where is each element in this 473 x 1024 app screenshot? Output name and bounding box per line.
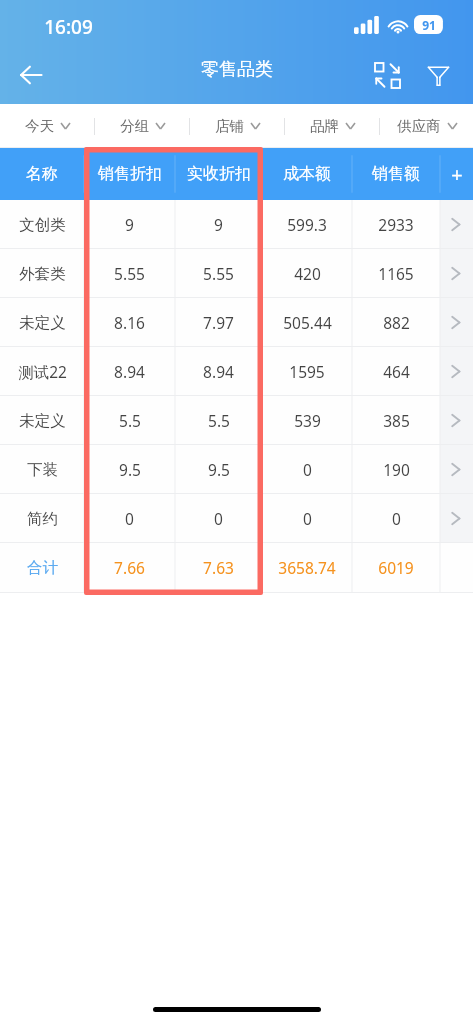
staticText: 3658.74 <box>278 557 336 578</box>
staticText: 分组 <box>120 117 149 135</box>
button[interactable]: Back <box>6 50 56 100</box>
staticText: 9.5 <box>119 459 141 480</box>
staticText: 9.5 <box>208 459 230 480</box>
staticText: 外套类 <box>19 264 66 284</box>
staticText: 385 <box>383 410 410 431</box>
button[interactable]: 分组 <box>95 104 190 148</box>
staticText: 8.16 <box>114 312 145 333</box>
staticText: 销售额 <box>372 164 420 184</box>
staticText: 店铺 <box>215 117 244 135</box>
staticText: 销售折扣 <box>98 164 162 184</box>
staticText: 0 <box>392 508 401 529</box>
staticText: 成本额 <box>283 164 331 184</box>
staticText: 2933 <box>378 214 414 235</box>
button[interactable]: 品牌 <box>285 104 380 148</box>
staticText: 0 <box>303 459 312 480</box>
button[interactable]: 供应商 <box>380 104 473 148</box>
button[interactable]: 今天 <box>0 104 95 148</box>
staticText: 8.94 <box>203 361 234 382</box>
staticText: 505.44 <box>283 312 332 333</box>
button[interactable]: 店铺 <box>190 104 285 148</box>
button[interactable]: 未定义 <box>0 396 473 445</box>
staticText: 190 <box>383 459 410 480</box>
staticText: 品牌 <box>310 117 339 135</box>
staticText: 599.3 <box>287 214 327 235</box>
staticText: 7.97 <box>203 312 234 333</box>
staticText: 名称 <box>26 164 58 184</box>
button[interactable]: 文创类 <box>0 200 473 249</box>
staticText: 16:09 <box>44 14 93 40</box>
staticText: 539 <box>294 410 321 431</box>
staticText: 5.5 <box>119 410 141 431</box>
button[interactable]: 外套类 <box>0 249 473 298</box>
button[interactable]: 简约 <box>0 494 473 543</box>
staticText: 6019 <box>378 557 414 578</box>
staticText: 今天 <box>25 117 54 135</box>
staticText: 91 <box>422 17 436 33</box>
staticText: 5.55 <box>114 263 145 284</box>
button[interactable]: 合计 <box>0 543 473 592</box>
staticText: 零售品类 <box>201 58 273 81</box>
staticText: 7.63 <box>203 557 234 578</box>
staticText: 1165 <box>378 263 414 284</box>
staticText: 0 <box>303 508 312 529</box>
staticText: 9 <box>125 214 134 235</box>
staticText: 5.5 <box>208 410 230 431</box>
staticText: 文创类 <box>19 215 66 235</box>
staticText: 0 <box>125 508 134 529</box>
button[interactable]: 测试22 <box>0 347 473 396</box>
staticText: 下装 <box>27 460 58 480</box>
staticText: 420 <box>294 263 321 284</box>
staticText: 7.66 <box>114 557 145 578</box>
staticText: 464 <box>383 361 410 382</box>
button[interactable]: 未定义 <box>0 298 473 347</box>
staticText: 882 <box>383 312 410 333</box>
staticText: 未定义 <box>19 411 66 431</box>
staticText: 供应商 <box>397 117 441 135</box>
staticText: 测试22 <box>18 361 67 382</box>
staticText: 未定义 <box>19 313 66 333</box>
button[interactable]: Transfer <box>364 52 410 98</box>
staticText: 5.55 <box>203 263 234 284</box>
staticText: 合计 <box>27 558 58 578</box>
button[interactable]: 下装 <box>0 445 473 494</box>
staticText: 9 <box>214 214 223 235</box>
staticText: 0 <box>214 508 223 529</box>
button[interactable]: Filter <box>415 52 461 98</box>
staticText: 8.94 <box>114 361 145 382</box>
staticText: + <box>451 161 463 188</box>
staticText: 1595 <box>289 361 325 382</box>
staticText: 简约 <box>27 509 58 529</box>
staticText: 实收折扣 <box>187 164 251 184</box>
